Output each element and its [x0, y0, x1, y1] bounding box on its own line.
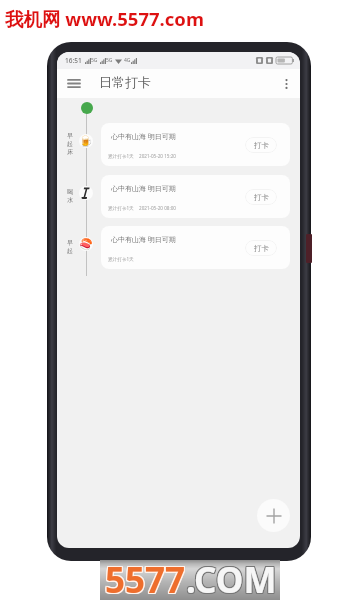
staticText: 5577 — [104, 556, 185, 596]
staticText: 心中有山海 明日可期 — [111, 235, 176, 245]
staticText: 心中有山海 明日可期 — [111, 132, 176, 142]
staticText: 🍺 — [79, 135, 93, 148]
staticText: 打卡 — [254, 193, 269, 202]
staticText: .COM — [187, 557, 278, 597]
staticText: 心中有山海 明日可期 — [111, 184, 176, 194]
staticText: 早 — [67, 239, 73, 247]
staticText: 5577 — [105, 556, 186, 596]
staticText: 累计打卡1天 — [108, 205, 134, 211]
button[interactable]: 打卡 — [245, 137, 277, 153]
staticText: 5577 — [106, 556, 187, 596]
button[interactable]: Open navigation menu — [63, 72, 85, 94]
staticText: 5577 — [106, 557, 187, 597]
staticText: 水 — [67, 196, 73, 204]
staticText: 5577 — [105, 557, 186, 597]
staticText: 4G — [124, 57, 131, 64]
staticText: .COM — [187, 555, 278, 595]
staticText: 5577 — [104, 555, 185, 595]
staticText: .COM — [185, 556, 276, 596]
staticText: 5577 — [105, 555, 186, 595]
staticText: .COM — [185, 555, 276, 595]
staticText: .COM — [185, 557, 276, 597]
staticText: 16:51 — [65, 56, 82, 65]
staticText: .COM — [186, 557, 277, 597]
staticText: .COM — [186, 556, 277, 596]
staticText: 🍣 — [79, 238, 93, 251]
staticText: .COM — [186, 555, 277, 595]
staticText: 累计打卡1天 — [108, 153, 134, 159]
button[interactable]: 心中有山海 明日可期 — [101, 226, 290, 269]
staticText: 打卡 — [254, 141, 269, 150]
button[interactable]: 打卡 — [245, 240, 277, 256]
staticText: .COM — [187, 556, 278, 596]
staticText: 打卡 — [254, 244, 269, 253]
button[interactable]: Add new check-in — [257, 499, 290, 532]
button[interactable]: More options — [276, 74, 296, 94]
staticText: 我机网 www.5577.com — [5, 6, 204, 31]
staticText: 2021-05-20 15:20 — [139, 153, 176, 159]
staticText: 5577 — [104, 557, 185, 597]
staticText: 日常打卡 — [99, 74, 151, 90]
staticText: 起 — [67, 247, 73, 255]
button[interactable]: 心中有山海 明日可期 — [101, 175, 290, 218]
staticText: 5577 — [106, 555, 187, 595]
staticText: 5G — [106, 57, 113, 64]
staticText: 喝 — [67, 188, 73, 196]
button[interactable]: 心中有山海 明日可期 — [101, 123, 290, 166]
staticText: 5G — [91, 57, 98, 64]
button[interactable]: 打卡 — [245, 189, 277, 205]
staticText: 累计打卡1天 — [108, 256, 134, 262]
staticText: 床 — [67, 148, 73, 156]
staticText: 起 — [67, 140, 73, 148]
staticText: 2021-05-20 08:00 — [139, 205, 176, 211]
staticText: 早 — [67, 132, 73, 140]
